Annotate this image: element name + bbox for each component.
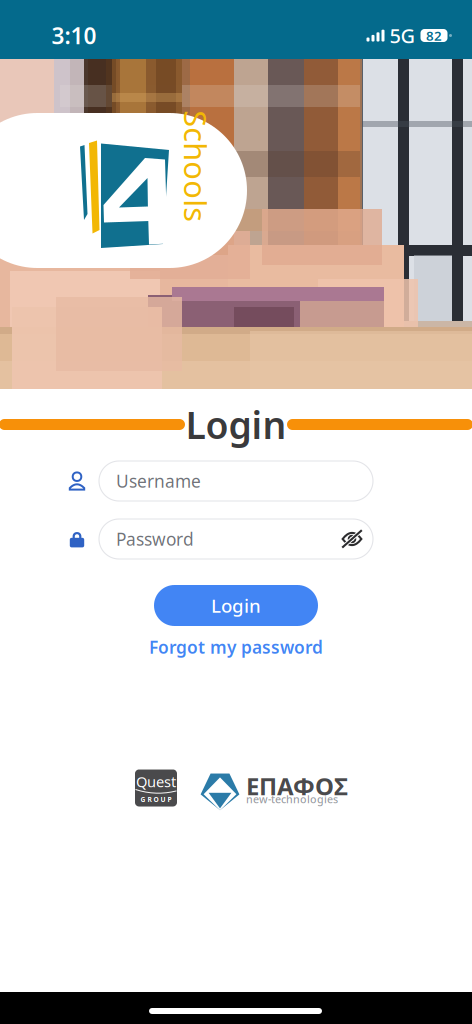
staticText: Quest (136, 772, 176, 791)
staticText: Login (185, 400, 286, 449)
staticText: G R O U P (140, 795, 171, 804)
staticText: 5G (389, 22, 415, 49)
button[interactable]: Forgot my password (136, 636, 336, 658)
staticText: new-technologies (246, 792, 338, 806)
staticText: Username (116, 469, 201, 492)
staticText: Schools (140, 146, 252, 187)
button[interactable]: Username (99, 461, 373, 501)
staticText: 82 (426, 27, 442, 44)
staticText: Login (211, 593, 261, 618)
staticText: 3:10 (51, 20, 96, 50)
staticText: Forgot my password (149, 635, 323, 658)
button[interactable]: Show password (335, 519, 369, 559)
button[interactable]: Password (99, 519, 373, 559)
staticText: Password (116, 527, 194, 550)
staticText: ΕΠΑΦΟΣ (246, 770, 348, 802)
button[interactable]: Login (154, 585, 318, 626)
